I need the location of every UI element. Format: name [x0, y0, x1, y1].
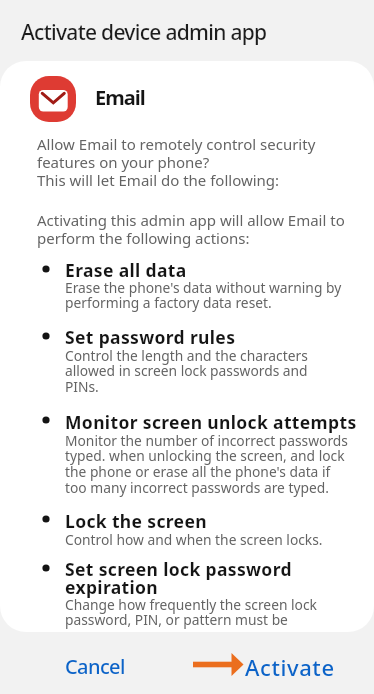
staticText: Control how and when the screen locks.: [65, 530, 323, 549]
button[interactable]: Cancel: [50, 642, 140, 686]
staticText: Control the length and the characters al…: [65, 346, 308, 396]
staticText: Set password rules: [65, 325, 236, 349]
staticText: Erase all data: [65, 258, 187, 282]
staticText: Activate: [245, 652, 335, 682]
staticText: Lock the screen: [65, 509, 207, 533]
staticText: Erase the phone's data without warning b…: [65, 278, 342, 312]
staticText: Change how frequently the screen lock pa…: [65, 595, 317, 629]
button[interactable]: Activate: [236, 642, 354, 686]
staticText: Activating this admin app will allow Ema…: [37, 210, 345, 248]
staticText: Cancel: [65, 653, 125, 680]
staticText: Allow Email to remotely control security…: [37, 134, 316, 190]
staticText: Set screen lock password expiration: [65, 557, 292, 599]
staticText: Activate device admin app: [21, 18, 267, 47]
staticText: Monitor the number of incorrect password…: [65, 431, 348, 497]
staticText: Email: [95, 84, 145, 111]
staticText: Monitor screen unlock attempts: [65, 410, 357, 434]
